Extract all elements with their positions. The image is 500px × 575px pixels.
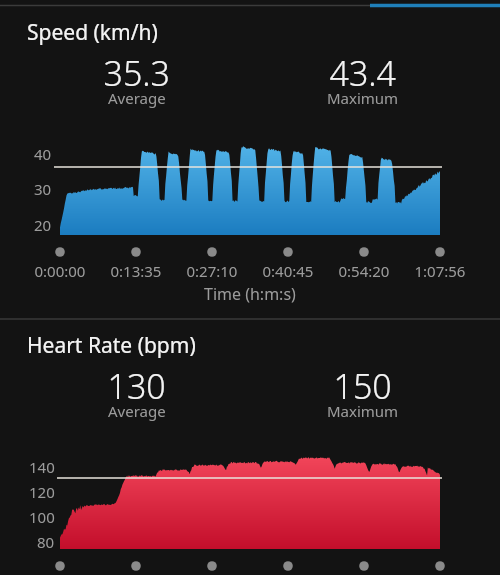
button[interactable]: Heart Rate chart [0, 318, 500, 575]
button[interactable]: Speed chart [0, 0, 500, 318]
